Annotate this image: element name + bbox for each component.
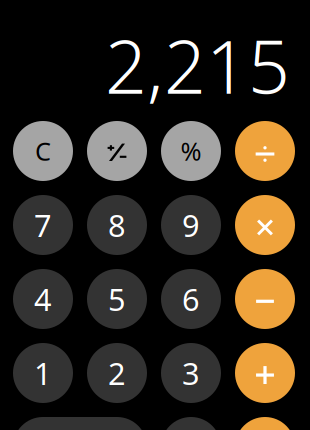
staticText: 1 <box>34 353 52 393</box>
button[interactable]: Multiply <box>235 195 295 255</box>
button[interactable]: % <box>161 121 221 181</box>
staticText: 3 <box>182 353 200 393</box>
staticText: 4 <box>34 279 52 319</box>
button[interactable]: Add <box>235 343 295 403</box>
staticText: 8 <box>108 205 126 245</box>
button[interactable]: Subtract <box>235 269 295 329</box>
staticText: 7 <box>34 205 52 245</box>
staticText: % <box>180 134 201 168</box>
button[interactable]: 7 <box>13 195 73 255</box>
button[interactable]: Equals <box>235 417 295 430</box>
button[interactable]: 5 <box>87 269 147 329</box>
button[interactable]: Toggle sign <box>87 121 147 181</box>
staticText: 5 <box>108 279 126 319</box>
button[interactable]: 2 <box>87 343 147 403</box>
button[interactable]: 1 <box>13 343 73 403</box>
button[interactable]: 0 <box>13 417 147 430</box>
staticText: 9 <box>182 205 200 245</box>
button[interactable]: 4 <box>13 269 73 329</box>
button[interactable]: C <box>13 121 73 181</box>
button[interactable]: . <box>161 417 221 430</box>
button[interactable]: 3 <box>161 343 221 403</box>
button[interactable]: 8 <box>87 195 147 255</box>
staticText: 2 <box>108 353 126 393</box>
button[interactable]: Divide <box>235 121 295 181</box>
staticText: 6 <box>182 279 200 319</box>
staticText: 2,215 <box>105 17 290 114</box>
button[interactable]: 6 <box>161 269 221 329</box>
button[interactable]: 9 <box>161 195 221 255</box>
staticText: C <box>35 134 51 168</box>
